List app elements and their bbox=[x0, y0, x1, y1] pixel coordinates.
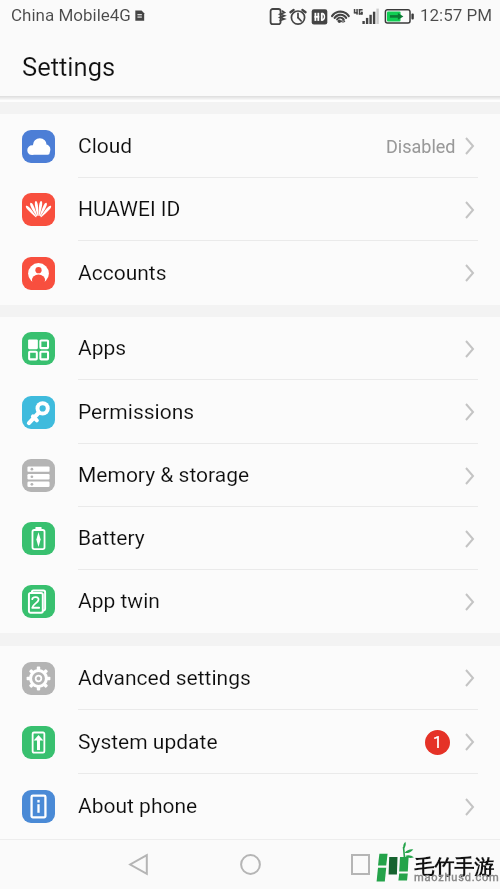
staticText: Cloud bbox=[78, 134, 133, 159]
staticText: App twin bbox=[78, 589, 160, 614]
button[interactable]: Back bbox=[108, 839, 168, 889]
button[interactable]: Cloud bbox=[0, 114, 500, 178]
button[interactable]: Apps bbox=[0, 317, 500, 380]
button[interactable]: About phone bbox=[0, 774, 500, 839]
staticText: Settings bbox=[22, 52, 116, 82]
staticText: Permissions bbox=[78, 400, 195, 425]
staticText: Accounts bbox=[78, 261, 167, 286]
button[interactable]: Recents bbox=[330, 839, 390, 889]
button[interactable]: Battery bbox=[0, 507, 500, 570]
staticText: 毛竹手游 bbox=[414, 855, 494, 880]
button[interactable]: HUAWEI ID bbox=[0, 178, 500, 241]
staticText: 12:57 PM bbox=[420, 5, 493, 25]
button[interactable]: Home bbox=[220, 839, 280, 889]
staticText: Battery bbox=[78, 526, 145, 551]
button[interactable]: App twin bbox=[0, 570, 500, 633]
button[interactable]: Permissions bbox=[0, 380, 500, 444]
button[interactable]: Memory & storage bbox=[0, 444, 500, 507]
staticText: HUAWEI ID bbox=[78, 197, 181, 222]
staticText: Memory & storage bbox=[78, 463, 250, 488]
staticText: 1 bbox=[433, 733, 442, 752]
staticText: maozhusd.com bbox=[414, 871, 500, 884]
button[interactable]: System update bbox=[0, 710, 500, 774]
staticText: Disabled bbox=[386, 136, 456, 157]
staticText: System update bbox=[78, 730, 218, 755]
staticText: Apps bbox=[78, 336, 127, 361]
button[interactable]: Accounts bbox=[0, 241, 500, 305]
button[interactable]: Advanced settings bbox=[0, 646, 500, 710]
staticText: China Mobile4G bbox=[11, 5, 131, 25]
staticText: About phone bbox=[78, 794, 198, 819]
staticText: Advanced settings bbox=[78, 666, 251, 691]
